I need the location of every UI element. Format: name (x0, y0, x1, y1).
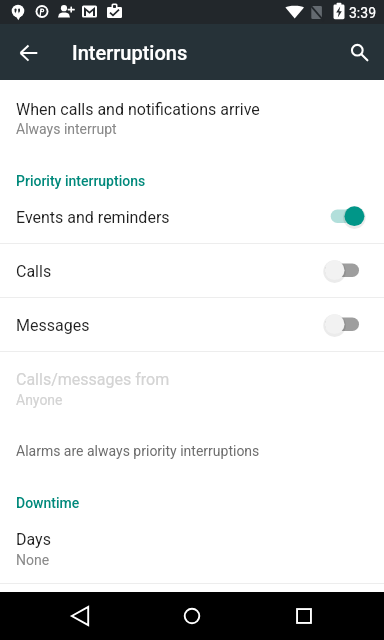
staticText: Alarms are always priority interruptions (16, 443, 260, 459)
button[interactable] (0, 80, 384, 145)
staticText: Days (16, 530, 51, 549)
staticText: Always interrupt (16, 121, 117, 137)
staticText: Calls/messages from (16, 370, 170, 389)
staticText: Events and reminders (16, 208, 170, 227)
staticText: When calls and notifications arrive (16, 100, 260, 119)
staticText: 3:39 (349, 5, 376, 21)
button[interactable]: Messages (0, 299, 384, 352)
button[interactable]: Navigate up (10, 28, 58, 76)
button[interactable]: Calls (0, 245, 384, 298)
button[interactable]: Events and reminders (0, 191, 384, 244)
staticText: Calls (16, 262, 52, 281)
button[interactable]: Search (334, 28, 382, 76)
button[interactable] (0, 512, 384, 583)
staticText: Interruptions (72, 41, 188, 64)
staticText: None (16, 552, 50, 568)
staticText: Priority interruptions (16, 173, 146, 189)
staticText: Anyone (16, 392, 63, 408)
button[interactable]: Overview (280, 592, 328, 640)
staticText: Downtime (16, 495, 80, 511)
button[interactable]: Back (56, 592, 104, 640)
staticText: Messages (16, 316, 90, 335)
button[interactable]: Home (168, 592, 216, 640)
